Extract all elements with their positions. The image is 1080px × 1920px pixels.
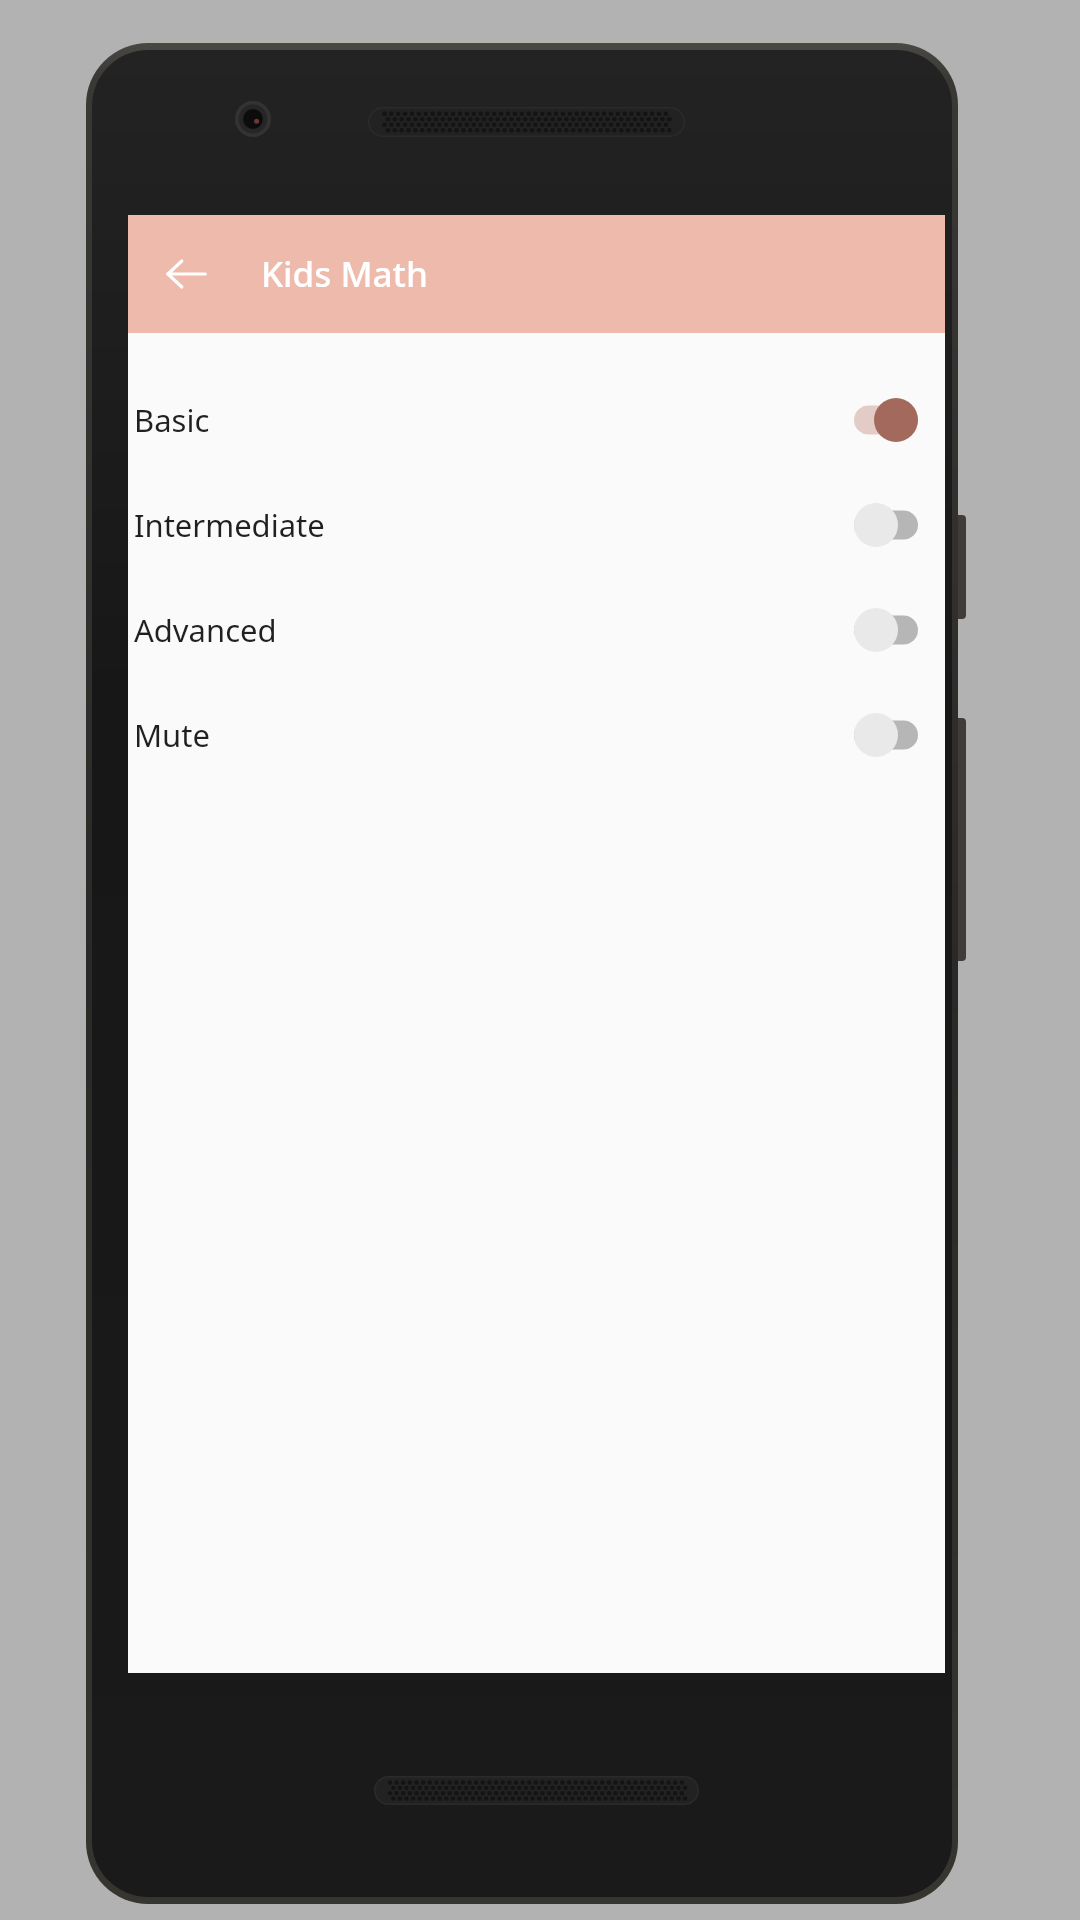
button[interactable]: Advanced off [854,605,918,655]
staticText: Kids Math [261,250,428,298]
button[interactable]: Intermediate off [854,500,918,550]
button[interactable]: Mute off [854,710,918,760]
staticText: Basic [134,399,210,441]
button[interactable]: Intermediate [128,472,945,577]
button[interactable]: Basic on [854,395,918,445]
staticText: Intermediate [134,504,325,546]
button[interactable]: Advanced [128,577,945,682]
button[interactable]: Basic [128,367,945,472]
button[interactable]: Back [138,226,234,322]
staticText: Advanced [134,609,277,651]
button[interactable]: Mute [128,682,945,787]
staticText: Mute [134,714,210,756]
